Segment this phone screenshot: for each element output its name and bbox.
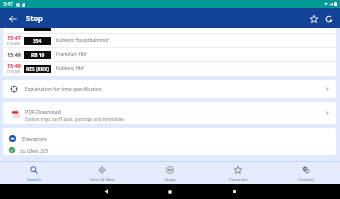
staticText: Stop (26, 13, 43, 23)
button[interactable]: 15:47 (3, 34, 336, 47)
button[interactable]: 15:49 (3, 48, 336, 61)
button[interactable]: Favorites (204, 162, 272, 184)
button[interactable]: Elevators (3, 128, 336, 155)
staticText: 15:47 (7, 34, 21, 41)
staticText: RB 10 (31, 52, 45, 59)
staticText: Here & Now (90, 176, 115, 182)
button[interactable]: Back (5, 11, 20, 26)
staticText: Contact (298, 176, 314, 182)
button[interactable]: Contact (272, 162, 340, 184)
button[interactable]: Stops (136, 162, 204, 184)
staticText: 354 (33, 38, 42, 45)
staticText: Frankfurt Hbf (56, 51, 87, 58)
staticText: Station map, tariff plan, postings and t… (25, 116, 125, 122)
staticText: (15:45) (7, 41, 21, 47)
staticText: Favorites (229, 176, 248, 182)
staticText: Explanation for time specification (25, 86, 102, 93)
button[interactable]: 15:49 (3, 62, 336, 75)
staticText: RES (RRX) (26, 66, 49, 73)
staticText: zu Gleis 2/3 (20, 147, 49, 154)
staticText: Stops (164, 176, 176, 182)
button[interactable]: Here & Now (68, 162, 136, 184)
staticText: 15:49 (7, 51, 21, 58)
button[interactable]: PDF-Download (3, 102, 336, 124)
staticText: 15:49 (7, 62, 21, 69)
button[interactable]: Refresh (321, 11, 336, 26)
staticText: 3:47 (3, 1, 13, 8)
staticText: Koblenz Hauptbahnhof (56, 37, 109, 44)
staticText: Elevators (22, 135, 47, 143)
button[interactable]: Explanation for time specification (3, 80, 336, 98)
button[interactable]: Search (0, 162, 68, 184)
staticText: Search (27, 176, 41, 182)
staticText: Koblenz Hbf (56, 65, 84, 72)
staticText: PDF-Download (25, 108, 61, 115)
button[interactable]: Add to favourites (306, 11, 321, 26)
staticText: (15:39) (7, 69, 21, 75)
